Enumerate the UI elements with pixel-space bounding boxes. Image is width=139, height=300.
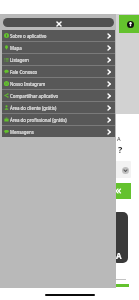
staticText: Área do profissional (grátis) xyxy=(10,117,106,123)
staticText: Nosso Instagram xyxy=(10,81,106,87)
staticText: Mapa xyxy=(10,45,106,51)
button[interactable]: Sobre o aplicativo xyxy=(2,30,115,41)
staticText: ? xyxy=(118,143,123,155)
staticText: Compartilhar aplicativo xyxy=(10,93,106,99)
button[interactable]: Mensagens xyxy=(2,126,115,137)
button[interactable]: Expand xyxy=(113,161,131,178)
staticText: Área do cliente (grátis) xyxy=(10,105,106,111)
button[interactable]: Previous xyxy=(113,183,131,199)
button[interactable]: Área do profissional (grátis) xyxy=(2,114,115,125)
staticText: Listagem xyxy=(10,57,106,63)
staticText: Mensagens xyxy=(10,129,106,135)
button[interactable]: Fale Conosco xyxy=(2,66,115,77)
staticText: Fale Conosco xyxy=(10,69,106,75)
button[interactable]: Nosso Instagram xyxy=(2,78,115,89)
button[interactable]: Listagem xyxy=(2,54,115,65)
button[interactable]: Compartilhar aplicativo xyxy=(2,90,115,101)
button[interactable]: Mapa xyxy=(2,42,115,53)
button[interactable]: Close menu xyxy=(3,18,114,27)
staticText: A xyxy=(117,135,121,142)
staticText: Sobre o aplicativo xyxy=(10,33,106,39)
button[interactable]: Account info xyxy=(119,15,139,33)
staticText: A xyxy=(116,250,122,261)
button[interactable]: Área do cliente (grátis) xyxy=(2,102,115,113)
